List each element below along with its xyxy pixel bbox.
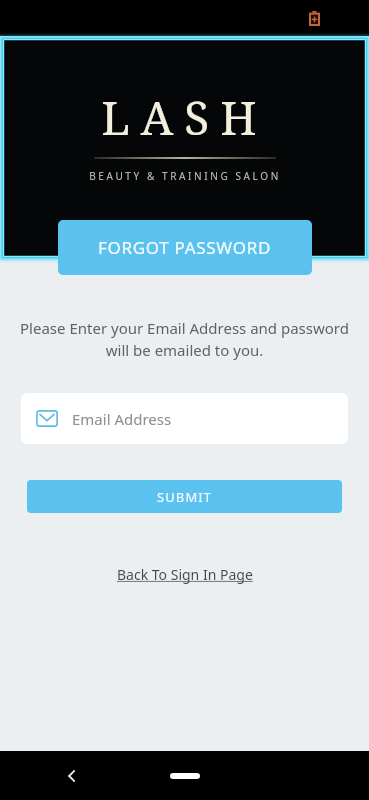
staticText: FORGOT PASSWORD (98, 236, 272, 259)
staticText: SUBMIT (157, 488, 213, 506)
staticText: Please Enter your Email Address and pass… (12, 318, 357, 361)
button[interactable]: FORGOT PASSWORD (58, 220, 312, 275)
button[interactable]: SUBMIT (27, 480, 342, 513)
staticText: LASH (101, 86, 268, 149)
button[interactable]: Email Address (21, 393, 348, 444)
button[interactable]: Back (52, 756, 92, 796)
button[interactable]: Back To Sign In Page (109, 561, 261, 588)
staticText: Back To Sign In Page (117, 565, 253, 584)
staticText: BEAUTY & TRAINING SALON (89, 169, 281, 183)
staticText: Email Address (72, 409, 172, 429)
button[interactable]: Home (155, 762, 215, 790)
